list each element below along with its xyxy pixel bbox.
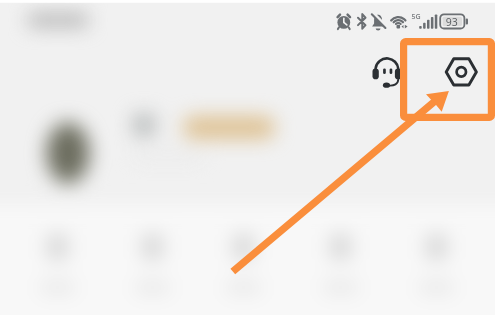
button[interactable]: Customer service [366, 52, 408, 94]
button[interactable]: Settings [437, 49, 483, 95]
